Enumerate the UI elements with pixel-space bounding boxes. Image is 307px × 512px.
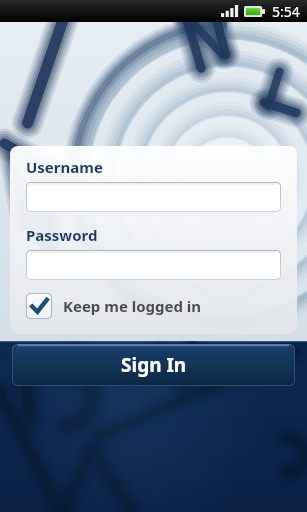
staticText: 5:54 [272,2,300,21]
button[interactable]: Keep me logged in [26,292,202,320]
staticText: Username [26,157,103,177]
button[interactable]: Sign In [12,344,295,386]
staticText: Sign In [121,352,187,378]
button[interactable] [26,182,281,212]
staticText: Keep me logged in [63,296,202,316]
button[interactable] [26,250,281,280]
staticText: Password [26,225,98,245]
